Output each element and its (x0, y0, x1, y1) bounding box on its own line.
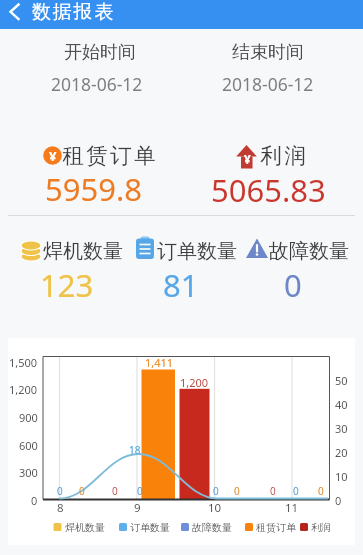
staticText: 5065.83 (211, 169, 326, 211)
staticText: 1,200 (180, 375, 209, 390)
staticText: 0 (335, 493, 342, 508)
staticText: 9 (134, 500, 141, 516)
staticText: 11 (285, 500, 299, 516)
staticText: 租赁订单 (256, 521, 296, 534)
staticText: 2018-06-12 (51, 72, 143, 96)
staticText: 订单数量 (130, 521, 170, 534)
staticText: 0 (79, 484, 85, 498)
staticText: ¥ (49, 147, 57, 165)
staticText: 租赁订单 (61, 142, 157, 169)
staticText: 1,500 (9, 355, 38, 370)
staticText: 结束时间 (232, 41, 304, 64)
staticText: 开始时间 (64, 41, 136, 64)
staticText: 0 (213, 484, 219, 498)
staticText: 123 (40, 264, 94, 306)
staticText: 订单数量 (157, 239, 237, 264)
staticText: 8 (57, 500, 64, 516)
staticText: 0 (318, 484, 324, 498)
staticText: 1,411 (145, 355, 174, 370)
button[interactable] (0, 0, 30, 29)
button[interactable] (186, 36, 351, 98)
staticText: 0 (270, 484, 276, 498)
staticText: 0 (112, 484, 118, 498)
staticText: 数据报表 (32, 0, 116, 24)
staticText: 600 (19, 438, 38, 453)
staticText: 利润 (259, 142, 307, 169)
staticText: 81 (163, 264, 199, 306)
staticText: 0 (234, 484, 240, 498)
staticText: 900 (19, 410, 38, 425)
staticText: 0 (57, 484, 63, 498)
staticText: 10 (208, 500, 222, 516)
staticText: 18 (129, 443, 141, 457)
staticText: 故障数量 (269, 239, 349, 264)
staticText: 0 (137, 484, 143, 498)
staticText: 1,200 (9, 382, 38, 397)
staticText: 焊机数量 (43, 239, 123, 264)
staticText: 利润 (311, 521, 331, 534)
staticText: 5959.8 (45, 168, 142, 210)
staticText: 0 (31, 493, 38, 508)
staticText: 300 (19, 465, 38, 480)
staticText: ¥ (244, 152, 251, 168)
staticText: 30 (335, 421, 348, 436)
staticText: 40 (335, 397, 348, 412)
staticText: 2018-06-12 (222, 72, 314, 96)
button[interactable] (16, 36, 181, 98)
staticText: 0 (293, 484, 299, 498)
staticText: 20 (335, 445, 348, 460)
staticText: 0 (284, 264, 302, 306)
staticText: 故障数量 (192, 521, 232, 534)
staticText: 焊机数量 (65, 521, 105, 534)
staticText: 10 (335, 469, 348, 484)
staticText: 50 (335, 373, 348, 388)
